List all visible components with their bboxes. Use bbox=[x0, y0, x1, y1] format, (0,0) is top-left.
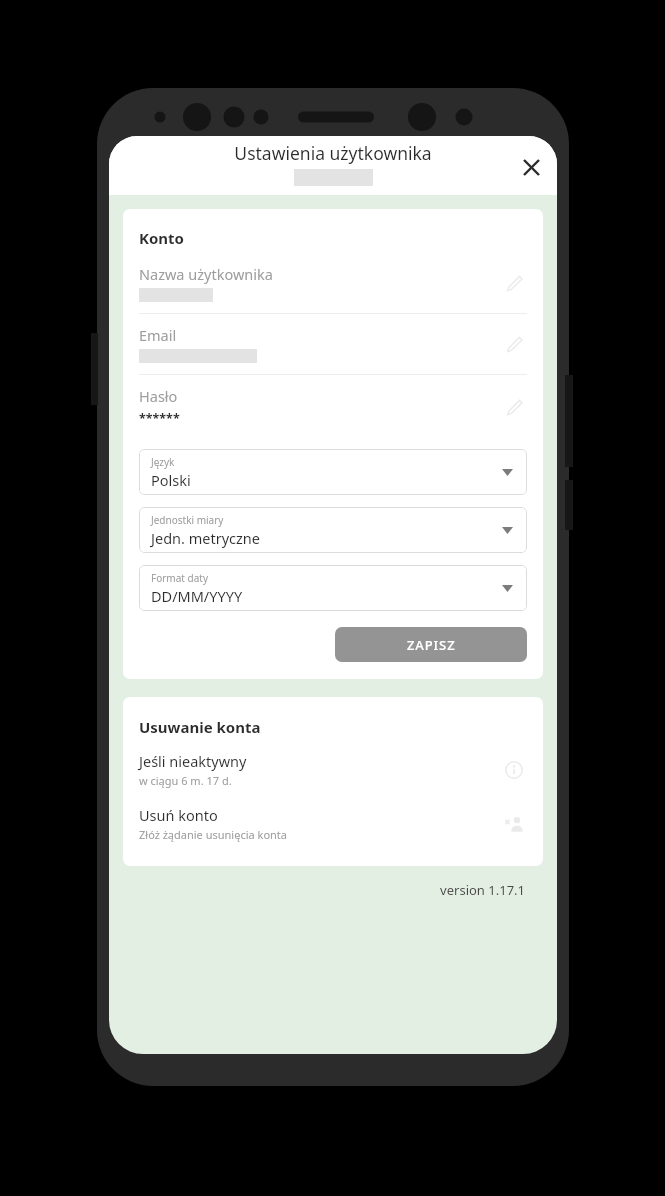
button[interactable]: Usuń konto bbox=[139, 805, 527, 842]
staticText: Język bbox=[151, 455, 175, 469]
staticText: Email bbox=[139, 325, 177, 345]
button[interactable]: Jednostki miary bbox=[139, 507, 527, 553]
staticText: Format daty bbox=[151, 571, 209, 585]
staticText: Nazwa użytkownika bbox=[139, 264, 273, 284]
staticText: Jedn. metryczne bbox=[151, 528, 260, 548]
staticText: Jeśli nieaktywny bbox=[139, 751, 247, 771]
button[interactable]: Nazwa użytkownika bbox=[139, 264, 527, 325]
button[interactable]: ZAPISZ bbox=[335, 627, 527, 662]
staticText: ****** bbox=[139, 410, 180, 427]
button[interactable]: Email bbox=[139, 325, 527, 386]
staticText: ZAPISZ bbox=[407, 636, 456, 654]
button[interactable]: Zamknij bbox=[513, 149, 549, 185]
button[interactable]: Hasło bbox=[139, 386, 527, 438]
button[interactable]: Format daty bbox=[139, 565, 527, 611]
staticText: Hasło bbox=[139, 386, 178, 406]
staticText: Złóż żądanie usunięcia konta bbox=[139, 827, 288, 842]
staticText: Usuń konto bbox=[139, 805, 218, 825]
staticText: DD/MM/YYYY bbox=[151, 586, 243, 606]
staticText: Usuwanie konta bbox=[139, 717, 261, 737]
staticText: Jednostki miary bbox=[151, 513, 224, 527]
button[interactable]: Informacja bbox=[139, 751, 527, 788]
staticText: Ustawienia użytkownika bbox=[109, 141, 557, 165]
staticText: Konto bbox=[139, 228, 184, 248]
staticText: w ciągu 6 m. 17 d. bbox=[139, 773, 232, 788]
staticText: version 1.17.1 bbox=[109, 881, 525, 899]
button[interactable]: Język bbox=[139, 449, 527, 495]
staticText: Polski bbox=[151, 470, 191, 490]
